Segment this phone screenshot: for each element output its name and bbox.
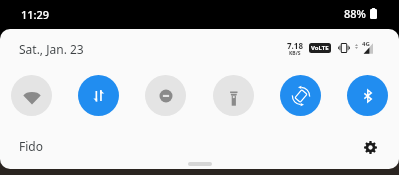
staticText: Sat., Jan. 23 [19, 41, 84, 57]
button[interactable]: Mobile data [78, 75, 119, 116]
staticText: 88% [344, 6, 366, 21]
button[interactable]: Settings [358, 135, 382, 159]
button[interactable]: Auto rotate [280, 75, 321, 116]
staticText: 7.18 [287, 40, 303, 51]
staticText: 4G [362, 40, 370, 48]
button[interactable]: Flashlight [213, 75, 254, 116]
staticText: 11:29 [21, 7, 50, 22]
staticText: KB/S [289, 50, 301, 57]
button[interactable]: Bluetooth [347, 75, 388, 116]
staticText: Fido [19, 138, 43, 154]
button[interactable]: Wi-Fi [11, 75, 52, 116]
staticText: VoLTE [311, 44, 329, 52]
button[interactable]: Do not disturb [145, 75, 186, 116]
